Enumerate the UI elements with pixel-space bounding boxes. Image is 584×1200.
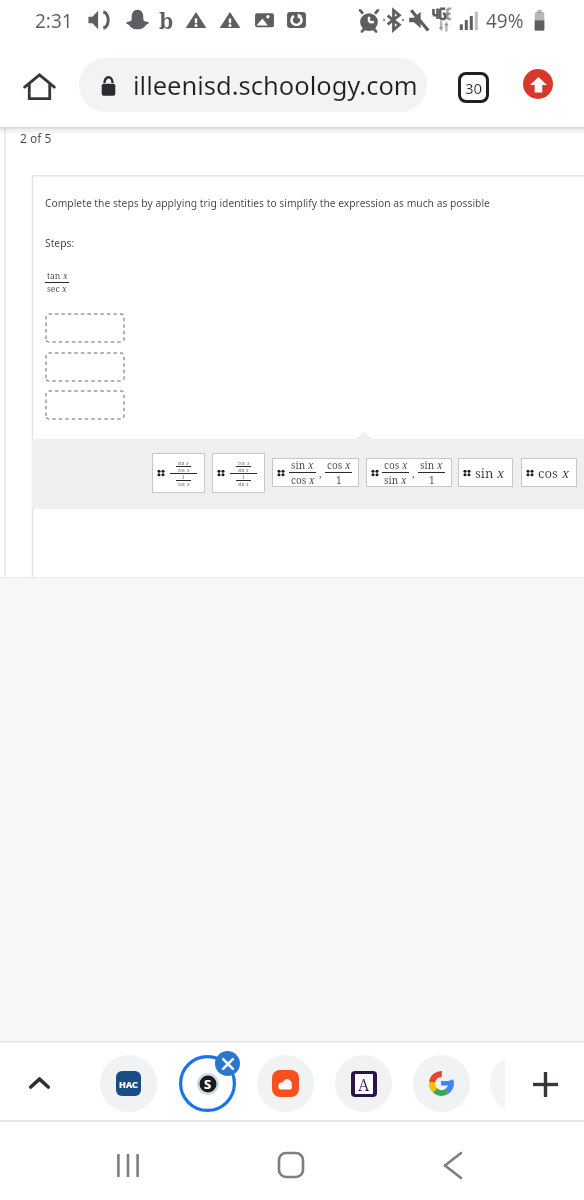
- staticText: sec: [47, 283, 62, 295]
- staticText: x: [401, 473, 407, 487]
- staticText: 2:31: [35, 8, 73, 34]
- staticText: cos: [384, 458, 402, 472]
- staticText: 1: [242, 474, 245, 480]
- button[interactable]: cos: [366, 458, 452, 487]
- staticText: x: [345, 458, 351, 472]
- staticText: cos: [327, 458, 345, 472]
- staticText: Complete the steps by applying trig iden…: [45, 196, 490, 210]
- button[interactable]: Update browser: [523, 69, 553, 99]
- staticText: 49%: [486, 8, 524, 34]
- button[interactable]: Tabs: [458, 72, 489, 103]
- button[interactable]: Expand toolbar: [17, 1061, 61, 1105]
- button[interactable]: sin: [272, 458, 359, 487]
- button[interactable]: Open app tab: [257, 1055, 314, 1112]
- staticText: x: [497, 464, 505, 482]
- staticText: b: [159, 5, 174, 35]
- staticText: illeenisd.schoology.com: [133, 68, 418, 103]
- staticText: ,: [412, 466, 415, 480]
- button[interactable]: cos: [212, 453, 265, 493]
- staticText: HAC: [119, 1078, 138, 1090]
- staticText: sin: [238, 481, 246, 487]
- staticText: sin: [291, 458, 308, 472]
- button[interactable]: Home: [265, 1139, 317, 1191]
- staticText: cos: [178, 481, 187, 487]
- staticText: x: [187, 467, 190, 473]
- staticText: x: [437, 458, 443, 472]
- staticText: cos: [538, 464, 562, 482]
- staticText: tan: [47, 270, 63, 282]
- button[interactable]: Close tab: [215, 1051, 240, 1076]
- staticText: x: [246, 467, 249, 473]
- staticText: A: [358, 1074, 370, 1094]
- staticText: 1: [336, 473, 342, 487]
- staticText: 1: [429, 473, 435, 487]
- staticText: x: [62, 283, 67, 295]
- staticText: x: [402, 458, 408, 472]
- staticText: x: [63, 270, 68, 282]
- staticText: cos: [291, 473, 309, 487]
- staticText: x: [309, 473, 315, 487]
- button[interactable]: Open app tab: [100, 1055, 157, 1112]
- staticText: 2 of 5: [20, 130, 52, 146]
- staticText: x: [187, 481, 190, 487]
- button[interactable]: cos: [521, 458, 577, 487]
- button[interactable]: New tab: [523, 1062, 567, 1106]
- staticText: x: [247, 460, 250, 466]
- button[interactable]: Open app tab: [335, 1055, 392, 1112]
- button[interactable]: Open app tab: [413, 1055, 470, 1112]
- staticText: sin: [475, 464, 497, 482]
- staticText: sin: [178, 460, 186, 466]
- staticText: x: [562, 464, 570, 482]
- staticText: sin: [384, 473, 401, 487]
- button[interactable]: Home: [17, 64, 61, 108]
- button[interactable]: sin: [458, 458, 513, 487]
- staticText: cos: [178, 467, 187, 473]
- staticText: 30: [465, 78, 483, 98]
- staticText: sin: [420, 458, 437, 472]
- staticText: x: [308, 458, 314, 472]
- button[interactable]: Recent apps: [102, 1139, 154, 1191]
- staticText: cos: [238, 460, 247, 466]
- button[interactable]: illeenisd.schoology.com: [79, 58, 427, 112]
- button[interactable]: Back: [427, 1139, 479, 1191]
- staticText: 1: [182, 474, 185, 480]
- staticText: x: [246, 481, 249, 487]
- staticText: S: [204, 1075, 212, 1093]
- button[interactable]: Current tab Schoology: [179, 1055, 236, 1112]
- staticText: Steps:: [45, 236, 75, 250]
- staticText: x: [186, 460, 189, 466]
- staticText: sin: [238, 467, 246, 473]
- button[interactable]: sin: [152, 453, 205, 493]
- staticText: ,: [319, 466, 322, 480]
